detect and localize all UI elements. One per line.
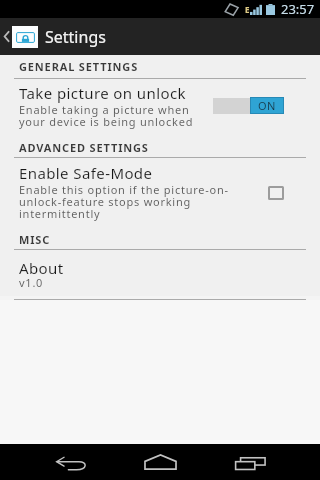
staticText: ON [258, 98, 276, 113]
staticText: Take picture on unlock [19, 83, 186, 103]
button[interactable]: Take picture on unlock, on [213, 97, 284, 114]
button[interactable]: Recent apps [215, 444, 286, 480]
button[interactable] [0, 79, 320, 140]
button[interactable] [0, 158, 320, 230]
staticText: 23:57 [281, 0, 315, 18]
staticText: Enable taking a picture when your device… [19, 102, 194, 129]
staticText: ADVANCED SETTINGS [19, 140, 149, 155]
staticText: v1.0 [19, 275, 44, 290]
button[interactable]: Back [36, 444, 107, 480]
staticText: About [19, 258, 64, 278]
button[interactable] [0, 250, 320, 299]
staticText: MISC [19, 232, 51, 247]
staticText: Settings [45, 26, 106, 48]
button[interactable]: Home [124, 444, 197, 480]
staticText: Enable this option if the picture-on- un… [19, 182, 229, 221]
staticText: Enable Safe-Mode [19, 163, 153, 183]
staticText: GENERAL SETTINGS [19, 59, 139, 74]
button[interactable]: Navigate up [0, 18, 40, 55]
button[interactable]: Enable Safe-Mode, off [268, 186, 284, 200]
staticText: E [245, 4, 250, 15]
